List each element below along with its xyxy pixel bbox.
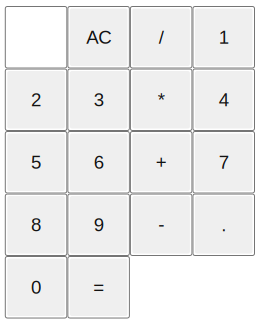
- button[interactable]: 2: [5, 68, 67, 131]
- staticText: AC: [86, 27, 111, 48]
- button[interactable]: 1: [192, 6, 255, 68]
- button[interactable]: -: [130, 193, 192, 256]
- button[interactable]: =: [67, 256, 130, 318]
- staticText: 1: [219, 27, 229, 48]
- staticText: 3: [94, 89, 104, 110]
- staticText: 8: [31, 214, 41, 235]
- button[interactable]: 5: [5, 131, 67, 193]
- staticText: 5: [31, 152, 41, 173]
- button[interactable]: .: [192, 193, 255, 256]
- staticText: 4: [219, 89, 229, 110]
- staticText: *: [158, 89, 165, 110]
- staticText: -: [158, 214, 164, 235]
- button[interactable]: /: [130, 6, 192, 68]
- staticText: 6: [94, 152, 104, 173]
- staticText: 0: [31, 277, 41, 298]
- button[interactable]: 4: [192, 68, 255, 131]
- staticText: .: [221, 214, 226, 235]
- button[interactable]: 8: [5, 193, 67, 256]
- button[interactable]: 6: [67, 131, 130, 193]
- button[interactable]: AC: [67, 6, 130, 68]
- staticText: 2: [31, 89, 41, 110]
- button[interactable]: 0: [5, 256, 67, 318]
- button[interactable]: *: [130, 68, 192, 131]
- staticText: +: [156, 152, 167, 173]
- staticText: =: [93, 277, 104, 298]
- staticText: 7: [219, 152, 229, 173]
- button[interactable]: +: [130, 131, 192, 193]
- button[interactable]: 7: [192, 131, 255, 193]
- button[interactable]: 9: [67, 193, 130, 256]
- button[interactable]: 3: [67, 68, 130, 131]
- staticText: /: [159, 27, 164, 48]
- staticText: 9: [94, 214, 104, 235]
